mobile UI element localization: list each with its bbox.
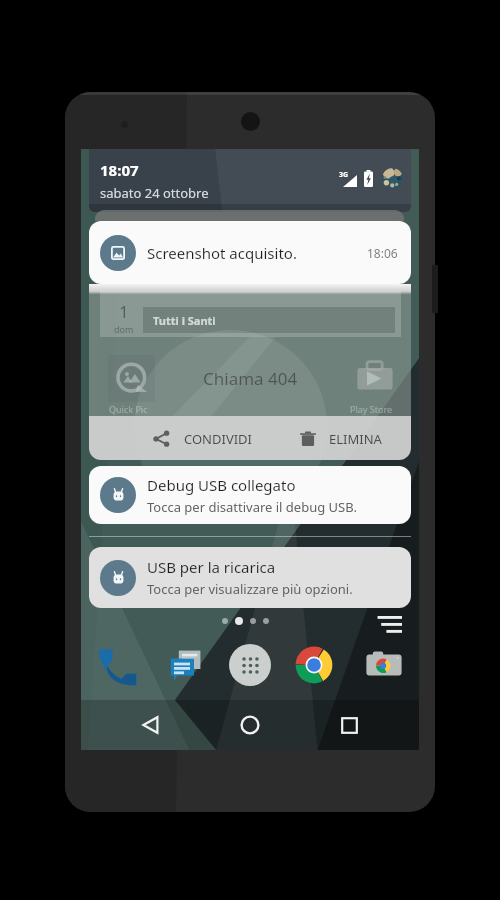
staticText: Tocca per disattivare il debug USB. — [147, 498, 358, 516]
other: Condividi — [152, 429, 171, 448]
staticText: 1 — [119, 300, 129, 323]
staticText: Chiama 404 — [203, 367, 298, 390]
staticText: 18:07 — [100, 160, 139, 180]
staticText: Screenshot acquisito. — [147, 243, 297, 263]
button[interactable]: Screenshot acquisito. — [89, 221, 411, 284]
staticText: Play Store — [350, 403, 392, 415]
button[interactable]: Fotocamera — [360, 641, 408, 689]
button[interactable]: Tutte le app — [226, 641, 274, 689]
button[interactable]: Telefono — [92, 641, 140, 689]
staticText: CONDIVIDI — [184, 430, 252, 448]
button[interactable]: Profilo utente — [382, 168, 403, 189]
other: Messaggi — [164, 643, 208, 687]
button[interactable]: Elimina — [294, 423, 387, 455]
staticText: ELIMINA — [329, 430, 382, 448]
other: Telefono — [93, 642, 139, 688]
button[interactable]: Recenti — [320, 700, 378, 750]
staticText: Quick Pic — [109, 403, 148, 415]
staticText: 3G — [339, 170, 349, 180]
other: Elimina — [299, 430, 317, 448]
staticText: sabato 24 ottobre — [100, 184, 209, 202]
staticText: Tocca per visualizzare più opzioni. — [147, 580, 353, 598]
button[interactable]: Indietro — [122, 700, 180, 750]
other: Fotocamera — [362, 643, 406, 687]
button[interactable]: Home — [221, 700, 279, 750]
button[interactable]: Debug USB collegato — [89, 466, 411, 524]
staticText: USB per la ricarica — [147, 557, 276, 577]
button[interactable]: USB per la ricarica — [89, 547, 411, 608]
staticText: 18:06 — [367, 245, 398, 261]
other: Chrome — [292, 643, 336, 687]
staticText: dom — [114, 323, 134, 335]
other: Tutte le app — [228, 643, 272, 687]
staticText: Tutti i Santi — [153, 313, 216, 328]
staticText: Debug USB collegato — [147, 475, 296, 495]
button[interactable]: Messaggi — [162, 641, 210, 689]
button[interactable]: Chrome — [290, 641, 338, 689]
button[interactable]: Condividi — [147, 422, 257, 455]
